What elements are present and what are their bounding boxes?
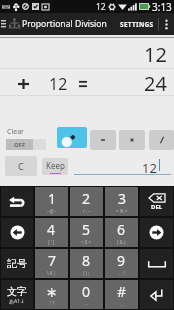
staticText: . : !	[119, 270, 125, 276]
staticText: < $ >	[81, 239, 92, 245]
staticText: 12	[144, 41, 167, 68]
button[interactable]: 1	[35, 187, 68, 216]
staticText: 3	[118, 189, 127, 208]
staticText: 24	[144, 70, 167, 97]
button[interactable]: 7	[35, 249, 68, 278]
staticText: 記号	[7, 257, 27, 270]
button[interactable]: Keep	[42, 158, 68, 175]
button[interactable]: Left	[1, 218, 33, 247]
staticText: = % ^	[116, 208, 128, 214]
staticText: 5	[82, 220, 91, 239]
button[interactable]: 8	[70, 249, 103, 278]
button[interactable]: 0	[70, 280, 103, 309]
staticText: 8	[82, 251, 91, 270]
staticText: 文字	[7, 285, 27, 298]
staticText: 2	[82, 189, 91, 208]
button[interactable]: 9	[105, 249, 138, 278]
button[interactable]: Right	[140, 218, 173, 247]
staticText: ( & )	[117, 239, 126, 245]
staticText: [ ' ]	[48, 239, 55, 245]
button[interactable]: Enter	[140, 280, 173, 309]
staticText: Keep	[46, 160, 65, 171]
staticText: 4	[47, 220, 56, 239]
button[interactable]: Multiply	[119, 130, 145, 150]
staticText: 12	[142, 159, 157, 177]
button[interactable]: 6	[105, 218, 138, 247]
button[interactable]: 4	[35, 218, 68, 247]
button[interactable]: DEL	[140, 187, 173, 216]
button[interactable]: Space	[140, 249, 173, 278]
staticText: ∗	[46, 284, 58, 300]
staticText: OFF	[14, 141, 26, 149]
button[interactable]: Navigate up	[0, 13, 6, 35]
staticText: , .	[120, 301, 124, 307]
staticText: 12	[96, 1, 106, 13]
staticText: 9	[117, 251, 126, 270]
button[interactable]: 5	[70, 218, 103, 247]
button[interactable]: Undo	[1, 187, 33, 216]
button[interactable]: Minus	[90, 130, 116, 150]
button[interactable]: C	[5, 156, 37, 176]
staticText: 6	[117, 220, 126, 239]
staticText: ( ) ;	[83, 270, 90, 276]
staticText: 12	[49, 73, 68, 95]
button[interactable]: #	[105, 280, 138, 309]
staticText: \ ¥ |	[47, 270, 57, 276]
button[interactable]: ∗	[35, 280, 68, 309]
staticText: / : ~	[83, 208, 91, 214]
staticText: #	[117, 282, 127, 301]
staticText: 0	[82, 282, 91, 301]
button[interactable]: App icon	[6, 13, 22, 35]
staticText: Proportional Division	[22, 18, 107, 30]
button[interactable]: 3	[105, 187, 138, 216]
button[interactable]: Clear toggle	[6, 139, 46, 150]
button[interactable]: More options	[159, 13, 174, 35]
staticText: 7	[48, 251, 57, 270]
staticText: - @ -	[47, 208, 57, 214]
button[interactable]: Plus	[57, 127, 87, 148]
button[interactable]: SETTINGS	[116, 13, 158, 35]
staticText: ~	[85, 301, 88, 307]
staticText: 1	[48, 189, 57, 208]
staticText: C	[18, 160, 24, 172]
staticText: 3:13	[152, 0, 172, 13]
staticText: ! ?	[50, 300, 55, 306]
staticText: SETTINGS	[120, 20, 154, 29]
staticText: DEL	[151, 203, 163, 211]
button[interactable]: Divide	[149, 130, 174, 150]
staticText: あA1↓	[9, 298, 25, 305]
button[interactable]: 2	[70, 187, 103, 216]
staticText: Clear	[7, 127, 24, 137]
button[interactable]: 記号	[1, 249, 33, 278]
button[interactable]: 文字	[1, 280, 33, 309]
